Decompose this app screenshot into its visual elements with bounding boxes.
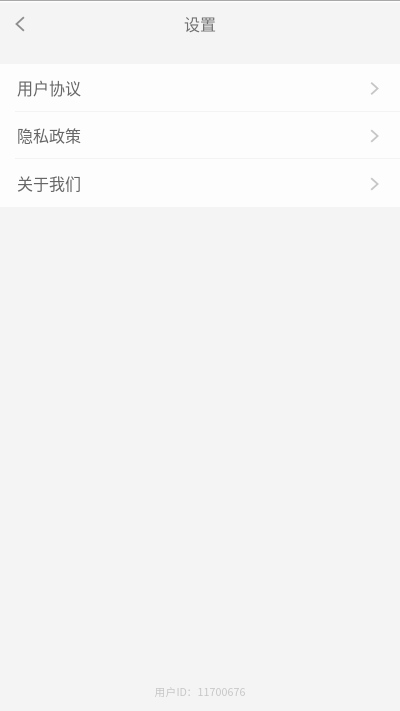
- staticText: 用户ID：11700676: [154, 684, 245, 699]
- button[interactable]: 关于我们: [0, 159, 400, 207]
- staticText: 关于我们: [17, 171, 81, 195]
- button[interactable]: 隐私政策: [0, 112, 400, 158]
- button[interactable]: Back: [0, 9, 38, 41]
- staticText: 用户协议: [17, 76, 81, 99]
- button[interactable]: 用户协议: [0, 64, 400, 111]
- staticText: 隐私政策: [17, 123, 81, 147]
- staticText: 设置: [184, 12, 216, 35]
